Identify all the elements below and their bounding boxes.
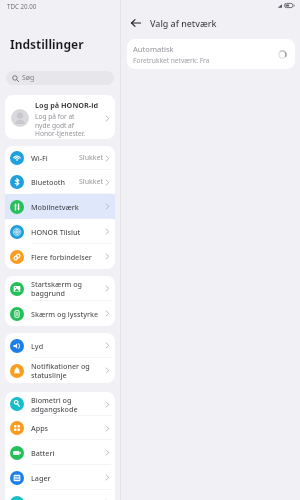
staticText: Notifikationer og statuslinje xyxy=(31,361,104,380)
staticText: Batteri xyxy=(31,448,104,458)
staticText: Log på for at nyde godt af Honor-tjenest… xyxy=(35,112,86,137)
button[interactable]: Bluetooth xyxy=(5,170,115,194)
staticText: Flere forbindelser xyxy=(31,252,104,262)
button[interactable]: Søg xyxy=(6,71,114,85)
staticText: Lyd xyxy=(31,341,104,351)
button[interactable]: Skærm og lysstyrke xyxy=(5,301,115,326)
staticText: Biometri og adgangskode xyxy=(31,395,104,414)
button[interactable]: Mobilnetværk xyxy=(5,194,115,219)
staticText: HONOR Tilslut xyxy=(31,227,104,237)
button[interactable]: Lyd xyxy=(5,333,115,358)
staticText: Startskærm og baggrund xyxy=(31,279,104,298)
staticText: Søg xyxy=(22,73,35,83)
staticText: Skærm og lysstyrke xyxy=(31,309,104,319)
button[interactable]: HONOR Tilslut xyxy=(5,219,115,244)
button[interactable]: Sikkerhed xyxy=(5,490,115,500)
staticText: Apps xyxy=(31,423,104,433)
staticText: Indstillinger xyxy=(10,36,84,52)
staticText: Bluetooth xyxy=(31,177,79,187)
staticText: Mobilnetværk xyxy=(31,202,104,212)
button[interactable]: Lager xyxy=(5,465,115,490)
button[interactable]: Notifikationer og statuslinje xyxy=(5,358,115,383)
staticText: TDC 20.00 xyxy=(7,2,37,10)
staticText: Lager xyxy=(31,473,104,483)
staticText: Automatisk xyxy=(133,44,174,54)
button[interactable]: Batteri xyxy=(5,440,115,465)
button[interactable]: Log på HONOR-id xyxy=(5,95,115,139)
staticText: Valg af netværk xyxy=(150,17,217,29)
button[interactable]: Back xyxy=(130,17,142,29)
button[interactable]: Biometri og adgangskode xyxy=(5,392,115,416)
staticText: Slukket xyxy=(79,177,103,187)
button[interactable]: Apps xyxy=(5,416,115,440)
staticText: Log på HONOR-id xyxy=(35,100,99,110)
staticText: Foretrukket netværk: Fra xyxy=(133,56,210,65)
button[interactable]: Flere forbindelser xyxy=(5,244,115,269)
staticText: Wi-Fi xyxy=(31,153,79,163)
button[interactable]: Startskærm og baggrund xyxy=(5,276,115,301)
staticText: Slukket xyxy=(79,153,103,163)
button[interactable]: Wi-Fi xyxy=(5,146,115,170)
button[interactable]: Automatisk xyxy=(127,39,295,69)
